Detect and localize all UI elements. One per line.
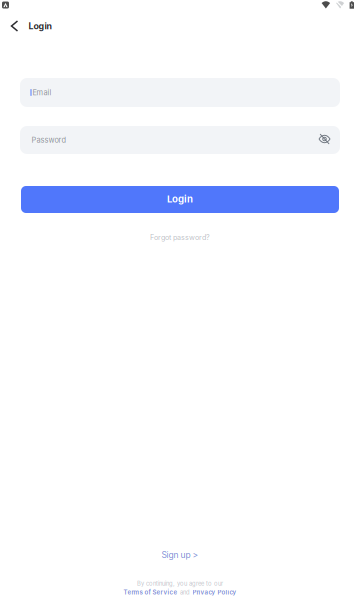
staticText: Terms of Service — [123, 589, 177, 596]
staticText: Login — [28, 21, 51, 31]
button[interactable]: Sign up > — [155, 548, 204, 562]
staticText: Password — [31, 135, 66, 144]
staticText: Privacy Policy — [193, 589, 237, 596]
button[interactable]: Login — [21, 186, 339, 213]
button[interactable]: Privacy Policy — [193, 589, 237, 596]
button[interactable]: Back — [0, 16, 28, 36]
button[interactable]: Show password — [314, 128, 335, 152]
staticText: By continuing, you agree to our — [137, 580, 223, 587]
button[interactable]: Forgot password? — [144, 231, 216, 244]
staticText: Sign up > — [161, 550, 198, 560]
staticText: Forgot password? — [150, 233, 210, 242]
button[interactable]: Terms of Service — [123, 589, 177, 596]
staticText: Email — [32, 88, 51, 97]
staticText: Login — [167, 193, 193, 205]
staticText: and — [180, 589, 190, 596]
